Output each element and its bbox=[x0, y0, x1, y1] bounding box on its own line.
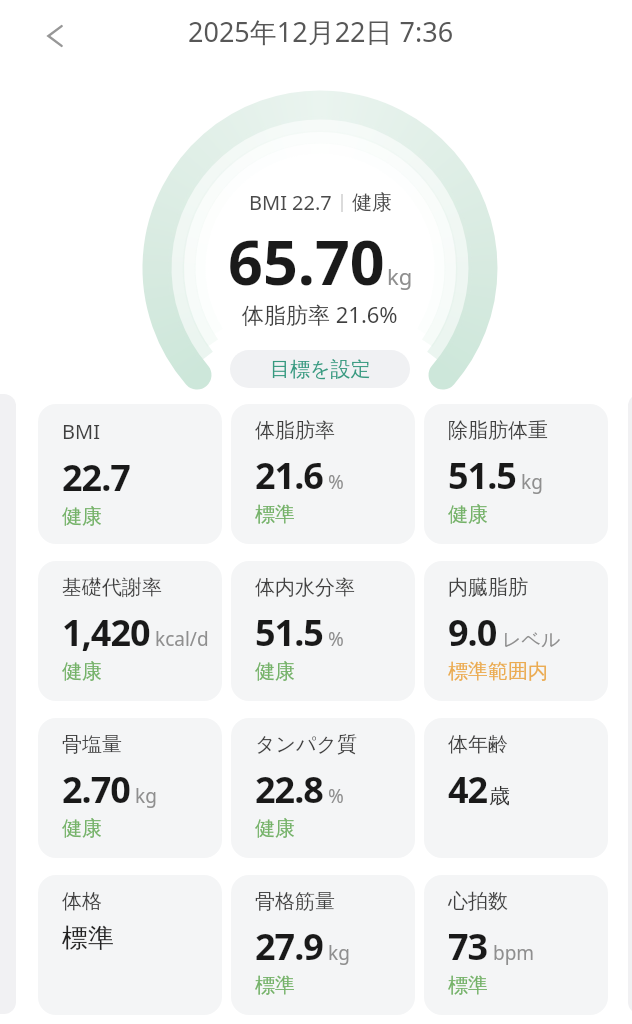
staticText: 2.70 bbox=[62, 765, 130, 814]
staticText: 標準 bbox=[255, 973, 295, 998]
staticText: 健康 bbox=[62, 659, 102, 684]
staticText: 22.8 bbox=[255, 765, 323, 814]
staticText: 2025年12月22日 7:36 bbox=[188, 13, 454, 50]
button[interactable]: 目標を設定 bbox=[230, 350, 410, 388]
staticText: 骨格筋量 bbox=[255, 889, 335, 914]
button[interactable]: 除脂肪体重 bbox=[424, 404, 608, 544]
staticText: 体脂肪率 bbox=[255, 418, 335, 443]
staticText: 65.70 bbox=[228, 220, 385, 303]
staticText: 体格 bbox=[62, 889, 102, 914]
staticText: kg bbox=[135, 783, 157, 809]
staticText: タンパク質 bbox=[255, 732, 357, 757]
staticText: % bbox=[328, 783, 344, 809]
button[interactable]: 体年齢 bbox=[424, 718, 608, 858]
button[interactable]: 体格 bbox=[38, 875, 222, 1015]
staticText: kg bbox=[521, 469, 543, 495]
staticText: 内臓脂肪 bbox=[448, 575, 528, 600]
button[interactable]: 骨塩量 bbox=[38, 718, 222, 858]
staticText: kcal/d bbox=[155, 626, 209, 652]
staticText: 標準範囲内 bbox=[448, 659, 548, 684]
staticText: % bbox=[328, 469, 344, 495]
button[interactable]: タンパク質 bbox=[231, 718, 415, 858]
staticText: kg bbox=[328, 940, 350, 966]
staticText: 73 bbox=[448, 922, 488, 971]
button[interactable] bbox=[32, 14, 76, 58]
staticText: BMI 22.7 bbox=[249, 189, 332, 216]
staticText: BMI bbox=[62, 418, 100, 445]
staticText: 健康 bbox=[62, 816, 102, 841]
button[interactable]: 骨格筋量 bbox=[231, 875, 415, 1015]
staticText: 目標を設定 bbox=[270, 357, 371, 382]
staticText: 22.7 bbox=[62, 453, 130, 502]
staticText: 体年齢 bbox=[448, 732, 508, 757]
button[interactable]: 体脂肪率 bbox=[231, 404, 415, 544]
button[interactable]: 内臓脂肪 bbox=[424, 561, 608, 701]
staticText: 42 bbox=[448, 765, 488, 814]
staticText: 体内水分率 bbox=[255, 575, 355, 600]
staticText: bpm bbox=[493, 940, 535, 966]
staticText: 歳 bbox=[489, 783, 510, 809]
staticText: 21.6 bbox=[255, 451, 323, 500]
button[interactable]: 体内水分率 bbox=[231, 561, 415, 701]
button[interactable]: 基礎代謝率 bbox=[38, 561, 222, 701]
staticText: 9.0 bbox=[448, 608, 497, 657]
staticText: 標準 bbox=[255, 502, 295, 527]
staticText: 健康 bbox=[448, 502, 488, 527]
staticText: 標準 bbox=[62, 922, 114, 955]
staticText: 健康 bbox=[62, 504, 102, 529]
staticText: 骨塩量 bbox=[62, 732, 122, 757]
staticText: 心拍数 bbox=[448, 889, 508, 914]
staticText: 27.9 bbox=[255, 922, 323, 971]
staticText: 体脂肪率 21.6% bbox=[242, 299, 398, 329]
staticText: 除脂肪体重 bbox=[448, 418, 548, 443]
staticText: 51.5 bbox=[255, 608, 323, 657]
staticText: 1,420 bbox=[62, 608, 150, 657]
button[interactable]: BMI bbox=[38, 404, 222, 544]
staticText: % bbox=[328, 626, 344, 652]
button[interactable]: 心拍数 bbox=[424, 875, 608, 1015]
staticText: 基礎代謝率 bbox=[62, 575, 162, 600]
staticText: 健康 bbox=[255, 816, 295, 841]
staticText: kg bbox=[387, 261, 413, 291]
staticText: 標準 bbox=[448, 973, 488, 998]
staticText: 健康 bbox=[255, 659, 295, 684]
staticText: 51.5 bbox=[448, 451, 516, 500]
staticText: 健康 bbox=[352, 190, 392, 215]
staticText: レベル bbox=[502, 628, 561, 652]
